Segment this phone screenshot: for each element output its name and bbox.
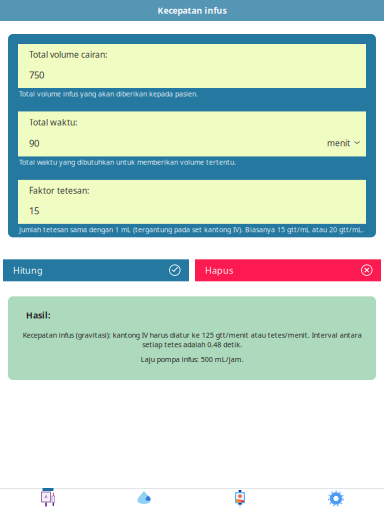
staticText: Kecepatan infus xyxy=(157,5,226,16)
button[interactable]: Kecepatan infus xyxy=(0,488,96,512)
staticText: Kecepatan infus (gravitasi): kantong IV … xyxy=(22,330,361,349)
staticText: Hapus xyxy=(205,264,233,276)
button[interactable]: Pengaturan xyxy=(288,488,384,512)
staticText: 90 xyxy=(29,137,39,149)
button[interactable]: Total volume cairan: xyxy=(18,44,366,88)
staticText: Hitung xyxy=(13,264,43,276)
button[interactable]: Hitung xyxy=(3,259,189,281)
staticText: Total waktu: xyxy=(29,116,77,128)
button[interactable]: Transfusi xyxy=(192,488,288,512)
staticText: 15 xyxy=(29,204,39,217)
button[interactable]: Tetesan xyxy=(96,488,192,512)
staticText: Total volume cairan: xyxy=(29,49,107,60)
staticText: Jumlah tetesan sama dengan 1 mL (tergant… xyxy=(19,225,364,234)
button[interactable]: Faktor tetesan: xyxy=(18,180,366,224)
staticText: Total volume infus yang akan diberikan k… xyxy=(19,89,198,98)
button[interactable]: Total waktu: xyxy=(18,111,366,156)
button[interactable]: Hapus xyxy=(195,259,381,281)
staticText: Laju pompa infus: 500 mL/jam. xyxy=(140,354,243,364)
staticText: Hasil: xyxy=(26,309,50,321)
staticText: menit xyxy=(327,137,350,149)
staticText: 750 xyxy=(29,68,44,81)
staticText: Faktor tetesan: xyxy=(29,185,89,196)
staticText: Total waktu yang dibutuhkan untuk member… xyxy=(19,157,236,167)
